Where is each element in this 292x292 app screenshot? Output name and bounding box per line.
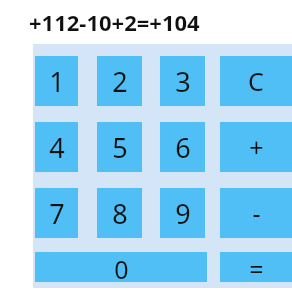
staticText: 1 (49, 63, 65, 100)
staticText: 6 (175, 129, 191, 166)
button[interactable]: 5 (97, 122, 142, 172)
button[interactable]: = (220, 252, 292, 282)
button[interactable]: +112-10+2=+104 (0, 0, 292, 44)
button[interactable]: 0 (35, 252, 207, 282)
button[interactable]: 8 (97, 188, 142, 238)
button[interactable]: Minus (220, 188, 292, 238)
staticText: 9 (175, 195, 191, 232)
staticText: = (249, 252, 264, 282)
staticText: + (249, 130, 264, 164)
button[interactable]: 4 (35, 122, 78, 172)
staticText: 3 (175, 63, 191, 100)
button[interactable]: 3 (160, 56, 205, 106)
staticText: 0 (114, 252, 129, 282)
button[interactable]: 2 (97, 56, 142, 106)
button[interactable]: 1 (35, 56, 78, 106)
staticText: 4 (49, 129, 65, 166)
staticText: 2 (112, 63, 128, 100)
staticText: 5 (112, 129, 128, 166)
staticText: 8 (112, 195, 128, 232)
button[interactable]: 9 (160, 188, 205, 238)
button[interactable]: 6 (160, 122, 205, 172)
staticText: 7 (49, 195, 65, 232)
button[interactable]: Plus (220, 122, 292, 172)
button[interactable]: 7 (35, 188, 78, 238)
staticText: - (252, 196, 261, 230)
staticText: +112-10+2=+104 (29, 7, 200, 37)
staticText: C (248, 64, 264, 98)
button[interactable]: Clear (220, 56, 292, 106)
